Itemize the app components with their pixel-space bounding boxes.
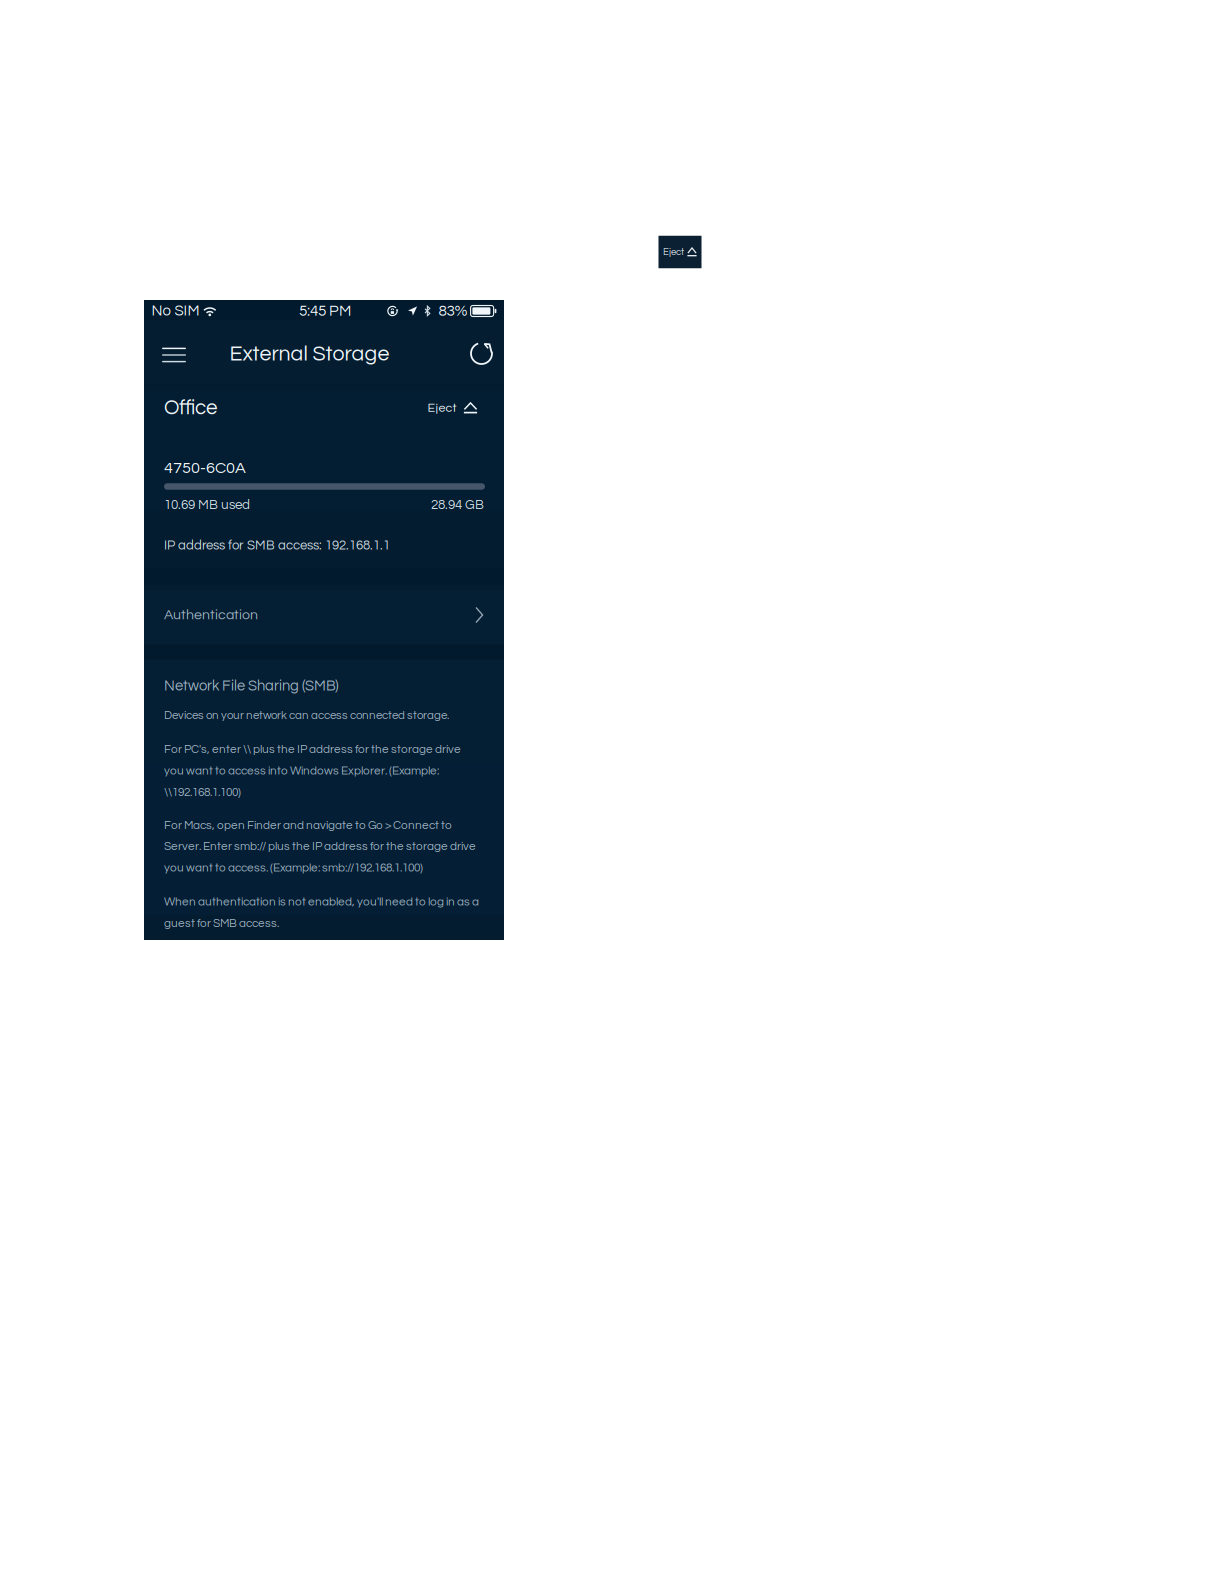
staticText: you want to access. (Example: smb://192.… — [164, 862, 423, 874]
button[interactable]: Eject — [658, 236, 701, 268]
staticText: Network File Sharing (SMB) — [164, 678, 339, 693]
staticText: Authentication — [164, 608, 258, 622]
staticText: Eject — [663, 247, 684, 257]
staticText: Devices on your network can access conne… — [164, 710, 449, 721]
staticText: Office — [164, 397, 217, 419]
staticText: Server. Enter smb:// plus the IP address… — [164, 840, 476, 853]
staticText: External Storage — [229, 343, 389, 365]
button[interactable]: Authentication — [144, 585, 504, 645]
staticText: 10.69 MB used — [164, 498, 250, 512]
staticText: guest for SMB access. — [164, 917, 279, 930]
staticText: IP address for SMB access: 192.168.1.1 — [164, 539, 390, 552]
staticText: 4750-6C0A — [164, 460, 246, 476]
staticText: For PC's, enter \\ plus the IP address f… — [164, 743, 461, 756]
button[interactable]: Refresh — [458, 330, 504, 376]
staticText: you want to access into Windows Explorer… — [164, 765, 439, 777]
staticText: \\192.168.1.100) — [164, 786, 241, 799]
button[interactable]: Menu — [151, 332, 197, 378]
staticText: 28.94 GB — [431, 498, 484, 512]
staticText: For Macs, open Finder and navigate to Go… — [164, 819, 452, 832]
staticText: When authentication is not enabled, you'… — [164, 896, 479, 908]
staticText: No SIM — [151, 303, 199, 319]
staticText: Eject — [427, 402, 456, 414]
staticText: 5:45 PM — [299, 303, 351, 319]
button[interactable]: Eject — [422, 393, 482, 423]
staticText: 83% — [438, 303, 467, 319]
